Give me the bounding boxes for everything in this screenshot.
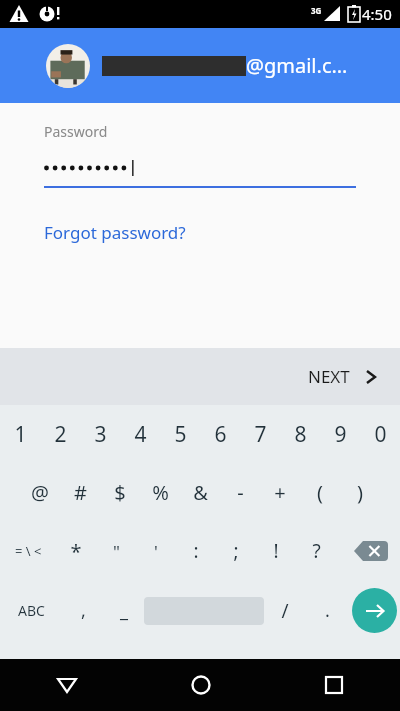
staticText: 3G	[311, 5, 322, 16]
staticText: _	[120, 598, 128, 623]
staticText: /	[281, 598, 289, 624]
button[interactable]: @	[20, 463, 60, 522]
staticText: '	[154, 540, 158, 563]
button[interactable]: 0	[360, 405, 400, 463]
button[interactable]: .	[306, 580, 348, 641]
button[interactable]: #	[60, 463, 100, 522]
staticText: 4	[134, 420, 147, 449]
staticText: @gmail.c…	[246, 52, 348, 79]
staticText: 7	[254, 420, 267, 449]
button[interactable]: )	[340, 463, 380, 522]
staticText: &	[193, 479, 208, 506]
staticText: (	[317, 479, 323, 506]
staticText: #	[74, 479, 87, 506]
staticText: .	[325, 598, 330, 623]
button[interactable]: -	[220, 463, 260, 522]
button[interactable]: Space	[144, 580, 264, 641]
staticText: = \ <	[15, 542, 42, 560]
staticText: NEXT	[308, 365, 350, 388]
button[interactable]: Back	[0, 659, 134, 711]
staticText: ABC	[18, 601, 45, 620]
button[interactable]: 5	[160, 405, 200, 463]
button[interactable]: 2	[40, 405, 80, 463]
staticText: -	[237, 479, 244, 506]
staticText: 1	[14, 420, 27, 449]
button[interactable]: /	[264, 580, 306, 641]
button[interactable]: !	[256, 522, 296, 580]
button[interactable]: &	[180, 463, 220, 522]
button[interactable]: 7	[240, 405, 280, 463]
staticText: $	[114, 479, 126, 506]
button[interactable]: "	[96, 522, 136, 580]
button[interactable]: @gmail.c…	[0, 28, 400, 103]
button[interactable]: Home	[134, 659, 267, 711]
button[interactable]: *	[56, 522, 96, 580]
button[interactable]: +	[260, 463, 300, 522]
staticText: Password	[44, 122, 108, 141]
button[interactable]: _	[104, 580, 144, 641]
button[interactable]: ABC	[0, 580, 62, 641]
button[interactable]: 8	[280, 405, 320, 463]
button[interactable]: 6	[200, 405, 240, 463]
staticText: 0	[374, 420, 387, 449]
button[interactable]: %	[140, 463, 180, 522]
staticText: *	[70, 538, 82, 565]
staticText: 8	[294, 420, 307, 449]
staticText: "	[113, 540, 120, 563]
button[interactable]: Delete	[342, 522, 400, 580]
button[interactable]: Forgot password?	[44, 221, 186, 244]
button[interactable]: NEXT	[284, 348, 400, 405]
staticText: ,	[81, 598, 86, 623]
staticText: :	[193, 538, 199, 564]
button[interactable]: ;	[216, 522, 256, 580]
button[interactable]: '	[136, 522, 176, 580]
button[interactable]: ,	[62, 580, 104, 641]
staticText: 3	[94, 420, 107, 449]
button[interactable]: :	[176, 522, 216, 580]
button[interactable]: Go	[348, 580, 400, 641]
staticText: ;	[233, 538, 239, 564]
staticText: Forgot password?	[44, 221, 186, 244]
staticText: !	[273, 538, 279, 564]
button[interactable]: Recents	[267, 659, 400, 711]
staticText: ?	[312, 538, 321, 564]
staticText: 5	[174, 420, 187, 449]
staticText: )	[357, 479, 363, 506]
button[interactable]: 3	[80, 405, 120, 463]
staticText: 6	[214, 420, 227, 449]
button[interactable]: = \ <	[0, 522, 56, 580]
staticText: 4:50	[362, 4, 392, 24]
staticText: 2	[54, 420, 67, 449]
button[interactable]: (	[300, 463, 340, 522]
button[interactable]: 9	[320, 405, 360, 463]
staticText: @	[31, 479, 49, 506]
button[interactable]: ?	[296, 522, 336, 580]
button[interactable]: $	[100, 463, 140, 522]
button[interactable]	[44, 154, 356, 182]
staticText: +	[274, 479, 286, 506]
staticText: %	[152, 479, 169, 506]
staticText: 9	[334, 420, 347, 449]
button[interactable]: 4	[120, 405, 160, 463]
button[interactable]: 1	[0, 405, 40, 463]
